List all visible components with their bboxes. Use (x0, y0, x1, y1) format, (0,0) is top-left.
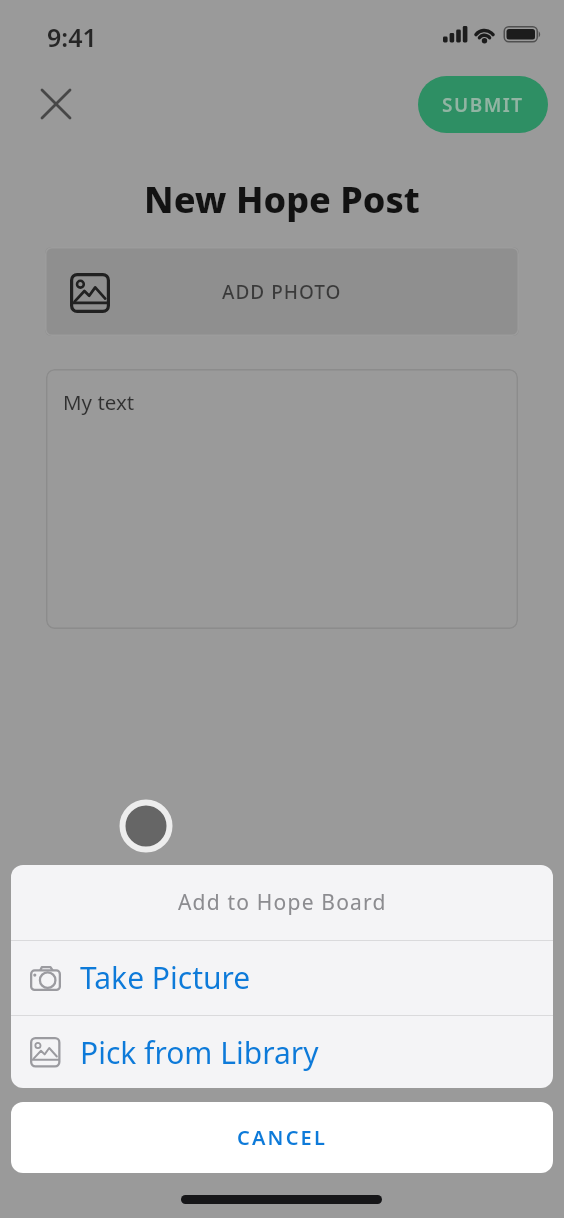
staticText: Add to Hope Board (178, 888, 387, 917)
button[interactable]: SUBMIT (418, 76, 548, 133)
staticText: SUBMIT (442, 92, 524, 118)
button[interactable]: My text (46, 369, 518, 629)
staticText: CANCEL (237, 1124, 328, 1151)
staticText: 9:41 (47, 20, 97, 54)
staticText: My text (63, 388, 135, 416)
button[interactable]: ADD PHOTO (45, 247, 519, 336)
button[interactable] (38, 86, 74, 122)
staticText: Pick from Library (80, 1032, 319, 1073)
button[interactable]: Pick from Library (11, 1016, 553, 1088)
button[interactable]: CANCEL (11, 1102, 553, 1173)
staticText: Take Picture (80, 957, 251, 998)
staticText: ADD PHOTO (222, 279, 342, 305)
staticText: New Hope Post (0, 175, 564, 224)
button[interactable]: Take Picture (11, 941, 553, 1014)
